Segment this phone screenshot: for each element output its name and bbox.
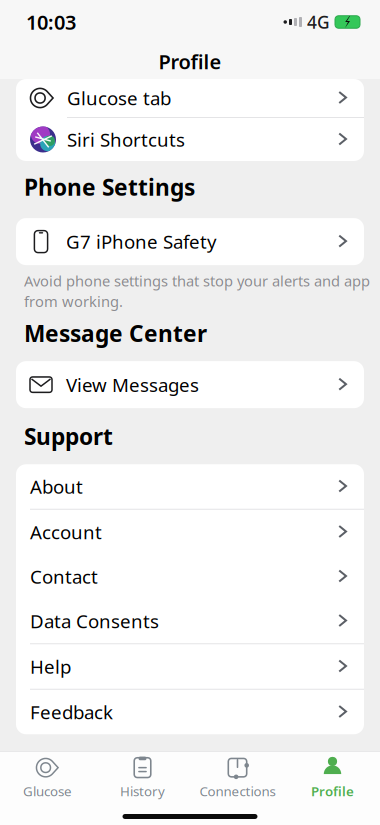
staticText: G7 iPhone Safety (66, 229, 217, 254)
button[interactable]: Data Consents (16, 599, 364, 643)
staticText: View Messages (66, 372, 199, 397)
staticText: Profile (311, 782, 354, 800)
button[interactable]: Help (16, 644, 364, 689)
button[interactable]: Glucose tab (16, 79, 364, 117)
button[interactable]: History (95, 753, 190, 803)
staticText: Help (30, 654, 71, 679)
staticText: Message Center (24, 318, 207, 348)
staticText: Avoid phone settings that stop your aler… (24, 271, 370, 291)
button[interactable]: Profile (285, 753, 380, 803)
staticText: About (30, 474, 83, 499)
button[interactable]: Feedback (16, 690, 364, 734)
staticText: 4G (307, 10, 330, 33)
button[interactable]: G7 iPhone Safety (16, 218, 364, 265)
staticText: Connections (199, 782, 275, 800)
staticText: Siri Shortcuts (67, 127, 185, 152)
staticText: from working. (24, 292, 123, 311)
button[interactable]: View Messages (16, 361, 364, 408)
staticText: Profile (158, 48, 221, 75)
staticText: Support (24, 421, 113, 451)
staticText: 10:03 (26, 9, 76, 35)
staticText: Glucose tab (67, 86, 171, 110)
button[interactable]: Glucose (0, 753, 95, 803)
button[interactable]: Contact (16, 554, 364, 599)
staticText: Data Consents (30, 609, 159, 633)
staticText: Feedback (30, 700, 113, 724)
button[interactable]: About (16, 464, 364, 509)
staticText: History (120, 782, 165, 800)
staticText: Contact (30, 564, 98, 589)
staticText: Glucose (23, 782, 72, 800)
staticText: Account (30, 520, 102, 544)
staticText: Phone Settings (24, 172, 195, 202)
button[interactable]: Connections (190, 753, 285, 803)
button[interactable]: Siri Shortcuts (16, 118, 364, 161)
button[interactable]: Account (16, 510, 364, 554)
